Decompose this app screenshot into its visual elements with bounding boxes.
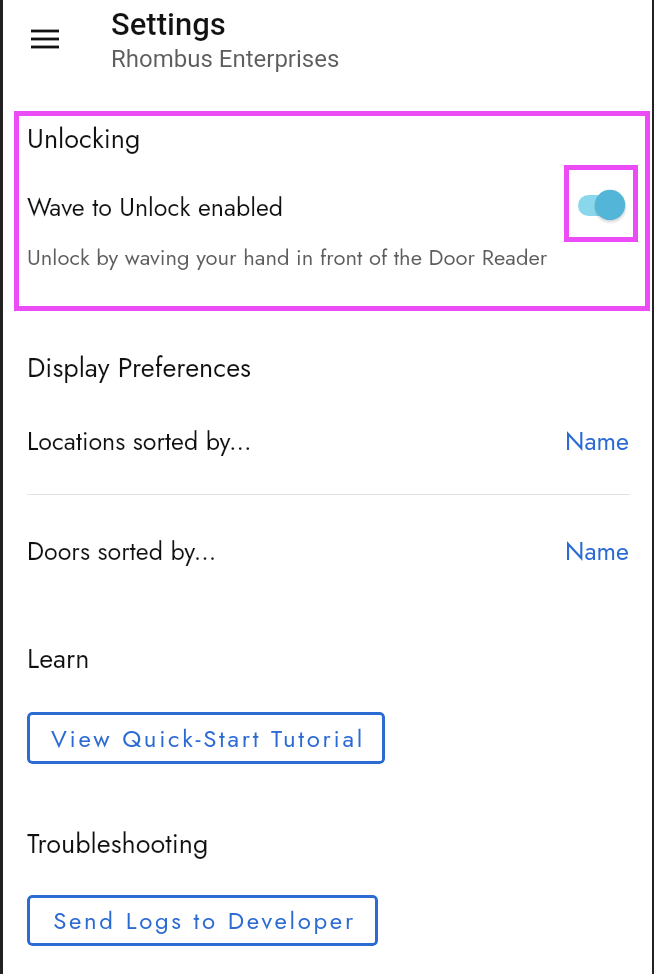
staticText: Wave to Unlock enabled [27, 189, 284, 225]
staticText: Send Logs to Developer [53, 903, 356, 938]
staticText: Name [565, 423, 629, 459]
button[interactable]: Wave to Unlock enabled toggle [564, 165, 638, 242]
staticText: Unlock by waving your hand in front of t… [27, 241, 548, 273]
button[interactable]: Locations sorted by... [0, 423, 654, 459]
staticText: Doors sorted by... [27, 533, 217, 569]
staticText: View Quick-Start Tutorial [51, 721, 365, 756]
button[interactable]: Open navigation drawer [15, 15, 75, 63]
staticText: Settings [111, 6, 226, 42]
staticText: Rhombus Enterprises [111, 45, 340, 73]
staticText: Unlocking [27, 119, 141, 158]
staticText: Name [565, 533, 629, 569]
staticText: Learn [27, 639, 90, 678]
staticText: Troubleshooting [27, 824, 209, 863]
button[interactable]: Send Logs to Developer [27, 895, 378, 946]
staticText: Display Preferences [27, 348, 251, 387]
button[interactable]: View Quick-Start Tutorial [27, 712, 385, 764]
staticText: Locations sorted by... [27, 423, 252, 459]
button[interactable]: Doors sorted by... [0, 533, 654, 569]
